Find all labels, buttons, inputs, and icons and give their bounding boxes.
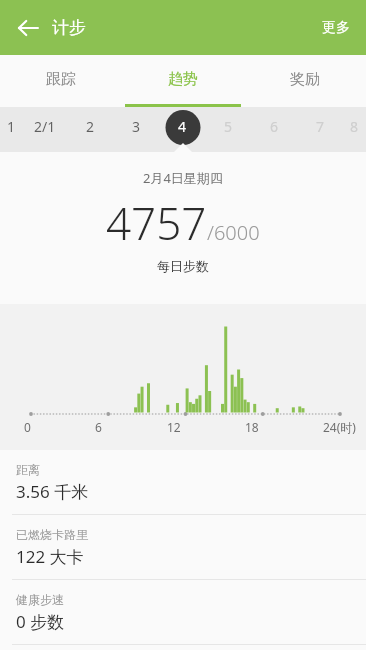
staticText: 趋势 xyxy=(168,70,198,89)
button[interactable]: 健康步速 xyxy=(0,580,366,645)
button[interactable]: 更多 xyxy=(306,0,366,55)
button[interactable]: 奖励 xyxy=(244,55,366,104)
button[interactable]: 已燃烧卡路里 xyxy=(0,515,366,580)
staticText: 健康步速 xyxy=(16,592,64,607)
button[interactable]: 3 xyxy=(113,104,159,148)
staticText: 0 xyxy=(24,419,31,435)
button[interactable]: Back xyxy=(6,6,50,50)
button[interactable]: 7 xyxy=(297,104,343,148)
staticText: 更多 xyxy=(322,19,350,37)
staticText: 12 xyxy=(167,419,181,435)
button[interactable]: 8 xyxy=(343,104,366,148)
button[interactable]: 4 xyxy=(159,104,205,148)
button[interactable]: 1 xyxy=(0,104,22,148)
staticText: 已燃烧卡路里 xyxy=(16,527,88,542)
staticText: 122 大卡 xyxy=(16,545,84,568)
staticText: 24(时) xyxy=(323,419,356,435)
staticText: /6000 xyxy=(207,219,260,246)
button[interactable]: 2/1 xyxy=(22,104,67,148)
staticText: 2月4日星期四 xyxy=(143,169,223,187)
button[interactable]: 跟踪 xyxy=(0,55,122,104)
button[interactable]: 趋势 xyxy=(122,55,244,104)
button[interactable]: 5 xyxy=(205,104,251,148)
button[interactable]: 2 xyxy=(67,104,113,148)
staticText: 1 xyxy=(7,117,16,136)
staticText: 8 xyxy=(350,117,359,136)
staticText: 跟踪 xyxy=(46,70,76,89)
staticText: 18 xyxy=(245,419,259,435)
staticText: 6 xyxy=(270,117,279,136)
staticText: 2/1 xyxy=(34,117,56,136)
staticText: 0 步数 xyxy=(16,610,65,633)
staticText: 4 xyxy=(178,117,187,136)
staticText: 5 xyxy=(224,117,233,136)
staticText: 距离 xyxy=(16,462,40,477)
staticText: 3.56 千米 xyxy=(16,480,89,503)
staticText: 2 xyxy=(86,117,95,136)
button[interactable]: 6 xyxy=(251,104,297,148)
staticText: 4757 xyxy=(106,193,207,253)
staticText: 奖励 xyxy=(290,70,320,89)
button[interactable]: 距离 xyxy=(0,450,366,515)
staticText: 6 xyxy=(95,419,102,435)
staticText: 3 xyxy=(132,117,141,136)
staticText: 每日步数 xyxy=(157,258,209,274)
staticText: 7 xyxy=(316,117,325,136)
staticText: 计步 xyxy=(52,17,86,38)
